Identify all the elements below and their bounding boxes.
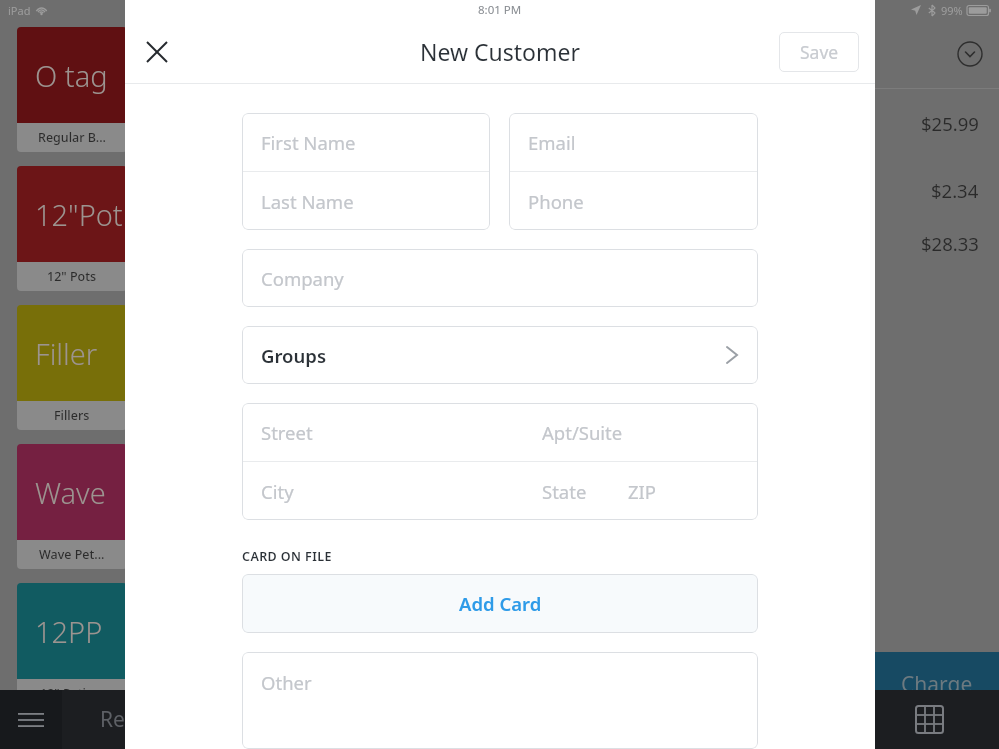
button[interactable]: Save [779,32,859,72]
staticText: Filler [35,334,98,373]
staticText: State [542,479,628,504]
button[interactable]: Email [509,113,758,171]
button[interactable]: Company [242,249,758,307]
staticText: O tag [35,56,108,95]
staticText: Last Name [261,189,354,214]
staticText: Apt/Suite [542,420,758,445]
staticText: 12"Pot [35,195,123,234]
staticText: 99% [941,3,963,18]
button[interactable]: Groups [242,326,758,384]
staticText: Wave [35,473,106,512]
button[interactable]: Street [242,403,758,461]
button[interactable]: Phone [509,172,758,230]
staticText: Charge [901,670,973,699]
staticText: Save [800,40,839,64]
staticText: City [261,479,542,504]
staticText: First Name [261,130,356,155]
button[interactable]: Last Name [242,172,490,230]
staticText: CARD ON FILE [242,548,332,565]
staticText: Email [528,130,576,155]
button[interactable]: Other [242,652,758,749]
staticText: Company [261,266,344,291]
staticText: Ret [100,705,133,734]
staticText: Fillers [54,407,90,424]
staticText: Wave Pet... [39,546,105,563]
button[interactable]: Add Card [242,574,758,633]
button[interactable]: First Name [242,113,490,171]
button[interactable]: Close [135,30,179,74]
button[interactable]: O tag [17,27,127,152]
staticText: Street [261,420,542,445]
staticText: 8:01 PM [478,2,522,18]
staticText: Other [261,670,312,695]
button[interactable]: Expand cart [875,20,983,88]
button[interactable]: City [242,462,758,520]
staticText: $28.33 [921,231,979,256]
staticText: iPad [8,3,31,18]
staticText: Regular B... [38,129,106,146]
staticText: Groups [261,343,327,368]
staticText: 12" Patio... [40,685,104,702]
button[interactable]: Charge [875,652,999,716]
button[interactable]: Wave [17,444,127,569]
staticText: $25.99 [921,111,979,136]
button[interactable]: 12PP [17,583,127,708]
button[interactable]: Menu [0,690,62,749]
staticText: Phone [528,189,584,214]
staticText: New Customer [420,36,581,67]
staticText: ZIP [628,479,758,504]
staticText: $2.34 [931,178,979,203]
button[interactable]: 12"Pot [17,166,127,291]
button[interactable]: Filler [17,305,127,430]
staticText: Add Card [459,591,542,616]
staticText: 12" Pots [47,268,97,285]
staticText: 12PP [35,612,103,651]
button[interactable]: Keypad [860,690,999,749]
